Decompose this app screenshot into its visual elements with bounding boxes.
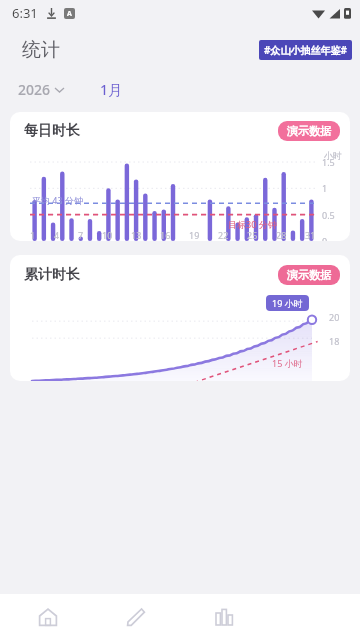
staticText: 演示数据 bbox=[287, 124, 331, 138]
staticText: 6:31 bbox=[12, 4, 38, 22]
staticText: 统计 bbox=[22, 38, 60, 62]
staticText: 2026 bbox=[18, 80, 51, 99]
staticText: 0 bbox=[322, 235, 344, 241]
staticText: 28 bbox=[276, 229, 287, 241]
staticText: 演示数据 bbox=[287, 268, 331, 282]
button[interactable]: 1月 bbox=[94, 77, 129, 102]
staticText: 1月 bbox=[100, 80, 123, 99]
staticText: 累计时长 bbox=[24, 266, 80, 284]
staticText: 13 bbox=[131, 229, 142, 241]
staticText: 18 bbox=[329, 335, 340, 347]
staticText: 0.5 bbox=[322, 209, 344, 221]
staticText: 4 bbox=[54, 229, 60, 241]
button[interactable]: #众山小抽丝年鉴# bbox=[259, 40, 352, 60]
staticText: 每日时长 bbox=[24, 122, 80, 140]
staticText: 7 bbox=[78, 229, 84, 241]
staticText: 10 bbox=[102, 229, 113, 241]
staticText: 20 bbox=[329, 311, 340, 323]
staticText: 16 bbox=[160, 229, 171, 241]
button[interactable]: 2026 bbox=[14, 77, 68, 102]
staticText: 25 bbox=[247, 229, 258, 241]
staticText: 31 bbox=[305, 229, 316, 241]
staticText: 1.5 bbox=[322, 156, 344, 168]
staticText: 19 bbox=[189, 229, 200, 241]
staticText: 19 小时 bbox=[272, 297, 303, 309]
button[interactable]: Statistics bbox=[180, 594, 268, 640]
button[interactable]: Edit bbox=[92, 594, 180, 640]
button[interactable]: 演示数据 bbox=[278, 121, 340, 141]
staticText: 22 bbox=[218, 229, 229, 241]
staticText: A bbox=[67, 9, 72, 19]
button[interactable]: Home bbox=[4, 594, 92, 640]
staticText: 1 bbox=[322, 182, 344, 194]
staticText: 平均 43 分钟 bbox=[32, 194, 83, 206]
staticText: 目标30 分钟 bbox=[228, 218, 277, 230]
staticText: 1 bbox=[30, 229, 36, 241]
staticText: 小时 bbox=[324, 150, 342, 161]
staticText: 15 小时 bbox=[272, 357, 303, 369]
button[interactable]: 演示数据 bbox=[278, 265, 340, 285]
staticText: #众山小抽丝年鉴# bbox=[264, 43, 347, 57]
